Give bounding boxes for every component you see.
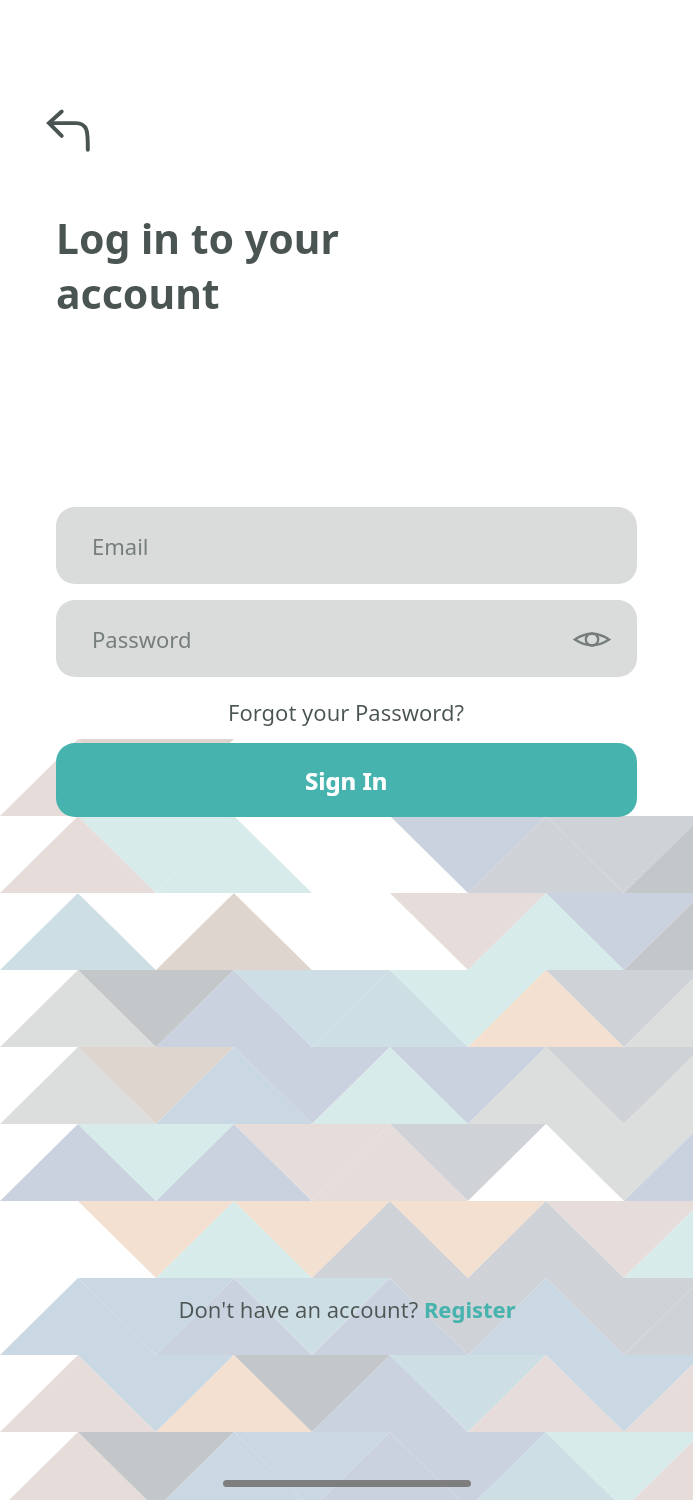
button[interactable]: Don't have an account? Register (164, 1288, 530, 1330)
staticText: Don't have an account? Register (178, 1294, 516, 1324)
button[interactable]: Email (56, 507, 637, 584)
staticText: Sign In (305, 764, 388, 797)
button[interactable]: Forgot your Password? (216, 693, 477, 731)
staticText: Forgot your Password? (228, 697, 465, 727)
staticText: Log in to your account (56, 210, 339, 321)
button[interactable]: Back (42, 104, 100, 162)
button[interactable]: Show password (569, 616, 615, 662)
staticText: Password (92, 624, 569, 654)
button[interactable]: Sign In (56, 743, 637, 817)
button[interactable]: Password (56, 600, 637, 677)
staticText: Email (92, 531, 149, 561)
